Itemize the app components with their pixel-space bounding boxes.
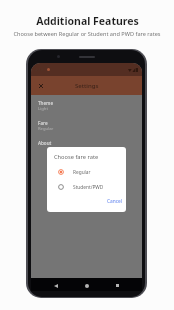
staticText: Choose fare rate — [54, 153, 99, 161]
staticText: Light — [38, 106, 48, 112]
staticText: Additional Features — [36, 14, 139, 28]
staticText: Regular — [73, 169, 91, 176]
button[interactable]: Theme — [31, 98, 142, 118]
staticText: Theme — [38, 100, 54, 106]
button[interactable]: Regular — [47, 165, 126, 179]
button[interactable]: Fare — [31, 118, 142, 138]
staticText: Cancel — [107, 198, 122, 205]
button[interactable]: Cancel — [104, 196, 125, 207]
staticText: Regular — [38, 126, 54, 132]
staticText: About — [38, 140, 52, 146]
button[interactable]: Home — [80, 278, 93, 291]
button[interactable]: Student/PWD — [47, 180, 126, 194]
staticText: Choose between Regular or Student and PW… — [13, 30, 161, 38]
staticText: Settings — [75, 82, 99, 90]
staticText: Fare — [38, 120, 48, 126]
button[interactable]: Back — [49, 278, 62, 291]
button[interactable]: Recents — [111, 278, 124, 291]
button[interactable]: About — [31, 138, 142, 158]
button[interactable]: Close — [34, 79, 47, 92]
staticText: Student/PWD — [73, 184, 104, 191]
